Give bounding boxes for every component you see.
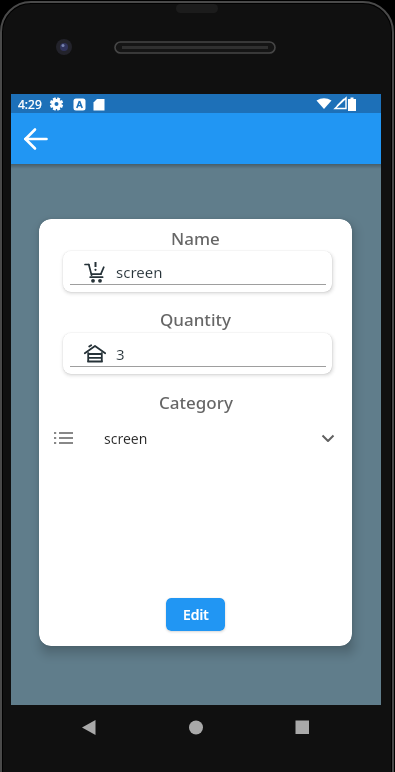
button[interactable] <box>20 123 52 155</box>
staticText: 3 <box>116 344 125 364</box>
staticText: screen <box>116 262 163 282</box>
button[interactable]: 3 <box>63 333 332 374</box>
staticText: screen <box>104 429 148 448</box>
staticText: Category <box>159 391 233 414</box>
button[interactable]: Edit <box>166 598 225 631</box>
button[interactable]: screen <box>63 251 332 292</box>
button[interactable]: screen <box>39 427 352 449</box>
staticText: Edit <box>183 605 209 624</box>
staticText: 4:29 <box>18 96 42 112</box>
staticText: Quantity <box>160 308 231 331</box>
staticText: Name <box>171 227 220 250</box>
